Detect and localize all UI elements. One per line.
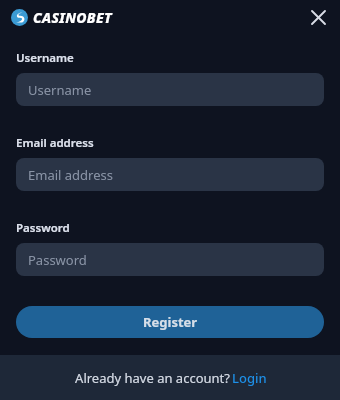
button[interactable]: CASINOBET [11, 8, 112, 27]
staticText: CASINOBET [33, 8, 112, 27]
staticText: Password [16, 220, 70, 236]
staticText: Already have an account? [73, 369, 232, 387]
button[interactable]: Close [304, 3, 332, 31]
staticText: Register [143, 313, 198, 331]
staticText: Email address [28, 166, 113, 184]
staticText: Login [232, 369, 267, 387]
staticText: Password [28, 251, 87, 269]
button[interactable]: Email address [16, 158, 324, 191]
button[interactable]: Already have an account? [67, 365, 273, 391]
button[interactable]: Register [16, 306, 324, 338]
button[interactable]: Username [16, 73, 324, 106]
staticText: Username [16, 50, 74, 66]
staticText: Email address [16, 135, 94, 151]
button[interactable]: Password [16, 243, 324, 276]
staticText: Username [28, 81, 92, 99]
